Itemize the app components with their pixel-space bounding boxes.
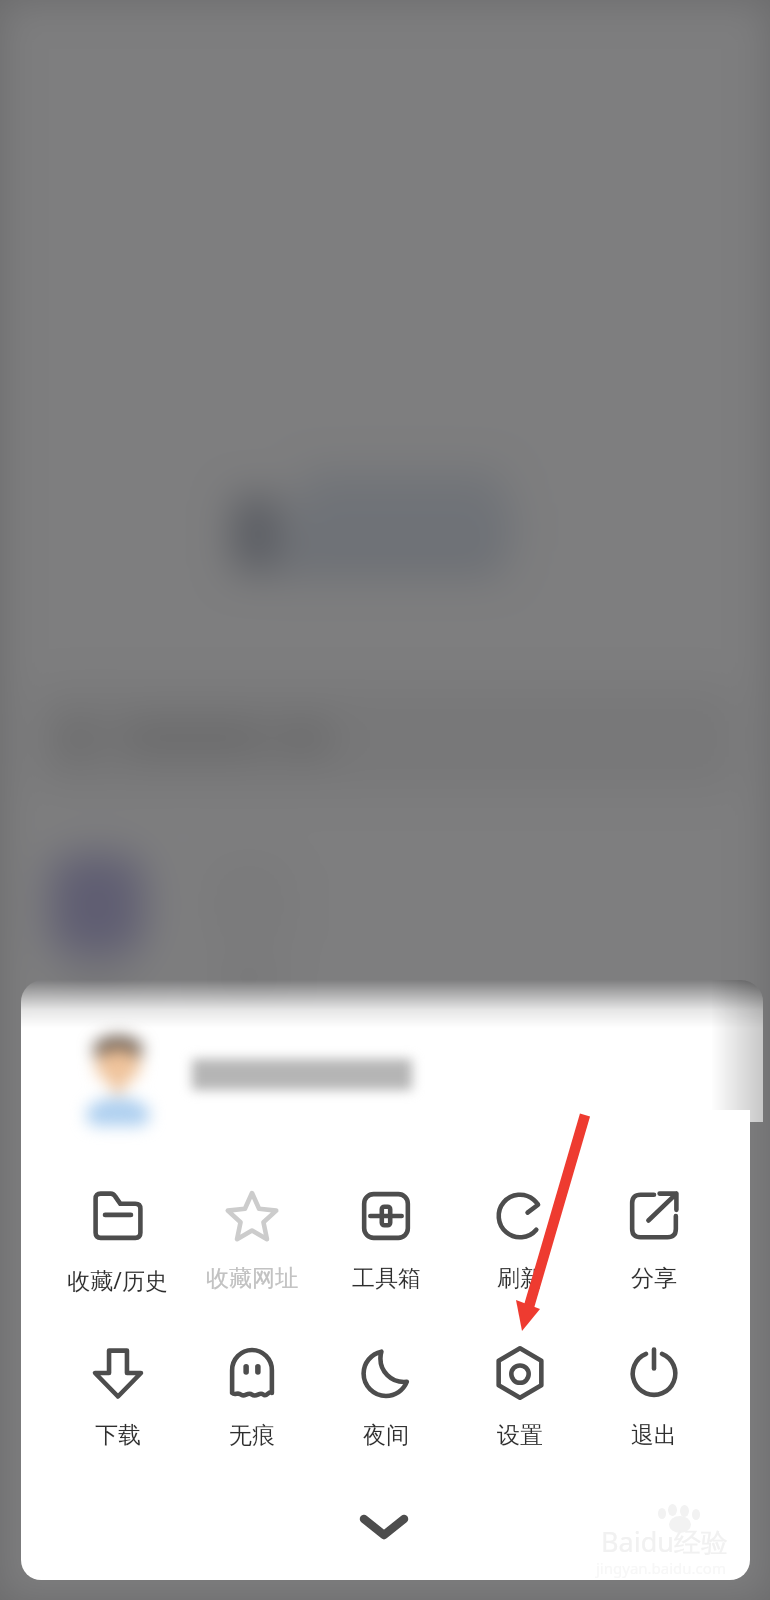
button[interactable]: 收藏/历史 — [50, 1174, 185, 1302]
button[interactable]: 下载 — [50, 1331, 185, 1459]
button[interactable]: 夜间 — [319, 1331, 453, 1459]
staticText: 无痕 — [229, 1421, 275, 1450]
staticText: 收藏/历史 — [67, 1264, 168, 1295]
button[interactable]: 收藏网址 — [185, 1174, 319, 1302]
button[interactable]: Account profile — [21, 988, 750, 1122]
staticText: 工具箱 — [352, 1264, 421, 1293]
button[interactable]: 无痕 — [185, 1331, 319, 1459]
button[interactable]: Dismiss menu — [0, 0, 770, 1600]
staticText: 退出 — [631, 1421, 677, 1450]
button[interactable]: Collapse menu — [334, 1484, 434, 1570]
button[interactable]: 分享 — [587, 1174, 721, 1302]
button[interactable]: 刷新 — [453, 1174, 587, 1302]
button[interactable]: 设置 — [453, 1331, 587, 1459]
staticText: Baidu经验 — [601, 1523, 728, 1560]
button[interactable]: 工具箱 — [319, 1174, 453, 1302]
button[interactable]: 退出 — [587, 1331, 721, 1459]
staticText: 分享 — [631, 1264, 677, 1293]
staticText: 夜间 — [363, 1421, 409, 1450]
staticText: 下载 — [95, 1421, 141, 1450]
staticText: 收藏网址 — [206, 1264, 298, 1293]
staticText: 设置 — [497, 1421, 543, 1450]
staticText: 刷新 — [497, 1264, 543, 1293]
